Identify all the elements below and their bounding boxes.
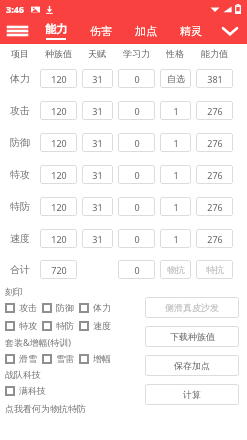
staticText: 加点 xyxy=(135,24,157,38)
button[interactable]: 0 xyxy=(118,165,155,184)
button[interactable]: 特防 xyxy=(42,320,79,331)
staticText: 0 xyxy=(134,137,140,149)
button[interactable]: 防御 xyxy=(42,302,79,313)
button[interactable]: 体力 xyxy=(79,302,116,313)
button[interactable]: 31 xyxy=(82,165,113,184)
button[interactable]: 0 xyxy=(118,133,155,152)
button[interactable]: 720 xyxy=(40,260,77,279)
staticText: 特防 xyxy=(56,320,74,331)
button[interactable]: 特抗 xyxy=(196,260,233,279)
button[interactable]: 381 xyxy=(196,69,233,88)
button[interactable]: 276 xyxy=(196,229,233,248)
staticText: 120 xyxy=(51,73,67,85)
button[interactable]: 1 xyxy=(160,133,191,152)
button[interactable]: 0 xyxy=(118,69,155,88)
button[interactable]: 31 xyxy=(82,229,113,248)
staticText: 0 xyxy=(134,105,140,117)
button[interactable]: 120 xyxy=(40,101,77,120)
staticText: 31 xyxy=(92,73,103,85)
staticText: 增幅 xyxy=(93,353,111,364)
staticText: 能力 xyxy=(45,22,67,36)
button[interactable]: 276 xyxy=(196,165,233,184)
button[interactable]: 特攻 xyxy=(5,320,42,331)
button[interactable]: 120 xyxy=(40,229,77,248)
button[interactable]: 276 xyxy=(196,197,233,216)
button[interactable]: 31 xyxy=(82,69,113,88)
button[interactable]: 276 xyxy=(196,101,233,120)
button[interactable]: 保存加点 xyxy=(145,355,239,376)
button[interactable]: 雪雷 xyxy=(42,353,79,364)
staticText: 点我看何为物抗特防 xyxy=(5,403,86,414)
staticText: 1 xyxy=(173,201,179,213)
staticText: 学习力 xyxy=(123,48,150,59)
staticText: 31 xyxy=(92,233,103,245)
button[interactable]: 120 xyxy=(40,133,77,152)
staticText: 31 xyxy=(92,201,103,213)
staticText: 120 xyxy=(51,233,67,245)
staticText: 天赋 xyxy=(88,48,106,59)
button[interactable]: 0 xyxy=(118,260,155,279)
button[interactable]: 点我看何为物抗特防 xyxy=(5,403,86,414)
staticText: 计算 xyxy=(183,389,201,400)
button[interactable]: 276 xyxy=(196,133,233,152)
staticText: 276 xyxy=(207,169,223,181)
button[interactable]: 自选 xyxy=(160,69,191,88)
staticText: 276 xyxy=(207,201,223,213)
staticText: 速度 xyxy=(10,232,30,245)
button[interactable]: 1 xyxy=(160,165,191,184)
staticText: 特抗 xyxy=(206,264,224,275)
staticText: 套装&增幅(特训) xyxy=(5,336,142,348)
staticText: 战队科技 xyxy=(5,369,142,380)
button[interactable]: 31 xyxy=(82,197,113,216)
button[interactable]: 能力 xyxy=(34,18,78,44)
staticText: 种族值 xyxy=(45,48,72,59)
button[interactable]: 增幅 xyxy=(79,353,116,364)
button[interactable]: 120 xyxy=(40,197,77,216)
staticText: 刻印 xyxy=(5,286,142,297)
button[interactable]: Expand xyxy=(213,18,247,44)
staticText: 120 xyxy=(51,201,67,213)
staticText: 项目 xyxy=(11,48,29,59)
staticText: 侧滑真皮沙发 xyxy=(165,302,219,313)
button[interactable]: 伤害 xyxy=(78,18,123,44)
staticText: 伤害 xyxy=(90,24,112,38)
staticText: 276 xyxy=(207,137,223,149)
button[interactable]: 120 xyxy=(40,165,77,184)
staticText: 物抗 xyxy=(167,264,185,275)
staticText: 0 xyxy=(134,233,140,245)
staticText: 0 xyxy=(134,73,140,85)
button[interactable]: 物抗 xyxy=(160,260,191,279)
button[interactable]: Menu xyxy=(0,18,34,44)
button[interactable]: 满科技 xyxy=(5,385,51,396)
button[interactable]: 攻击 xyxy=(5,302,42,313)
button[interactable]: 120 xyxy=(40,69,77,88)
button[interactable]: 0 xyxy=(118,101,155,120)
staticText: 1 xyxy=(173,137,179,149)
button[interactable]: 0 xyxy=(118,197,155,216)
button[interactable]: 1 xyxy=(160,101,191,120)
button[interactable]: 0 xyxy=(118,229,155,248)
button[interactable]: 31 xyxy=(82,133,113,152)
button[interactable]: 加点 xyxy=(123,18,168,44)
staticText: 攻击 xyxy=(10,104,30,117)
button[interactable]: 31 xyxy=(82,101,113,120)
button[interactable]: 速度 xyxy=(79,320,116,331)
staticText: 120 xyxy=(51,169,67,181)
staticText: 防御 xyxy=(56,302,74,313)
button[interactable]: 1 xyxy=(160,197,191,216)
staticText: 自选 xyxy=(167,73,185,84)
button[interactable]: 侧滑真皮沙发 xyxy=(145,297,239,318)
button[interactable]: 精灵 xyxy=(168,18,213,44)
staticText: 1 xyxy=(173,233,179,245)
staticText: 120 xyxy=(51,137,67,149)
staticText: 保存加点 xyxy=(174,360,210,371)
staticText: 276 xyxy=(207,105,223,117)
button[interactable]: 下载种族值 xyxy=(145,326,239,347)
staticText: 3:46 xyxy=(6,3,24,15)
button[interactable]: 1 xyxy=(160,229,191,248)
button[interactable]: 滑雪 xyxy=(5,353,42,364)
button[interactable]: 计算 xyxy=(145,384,239,405)
staticText: 1 xyxy=(173,105,179,117)
staticText: 720 xyxy=(51,264,67,276)
staticText: 攻击 xyxy=(19,302,37,313)
